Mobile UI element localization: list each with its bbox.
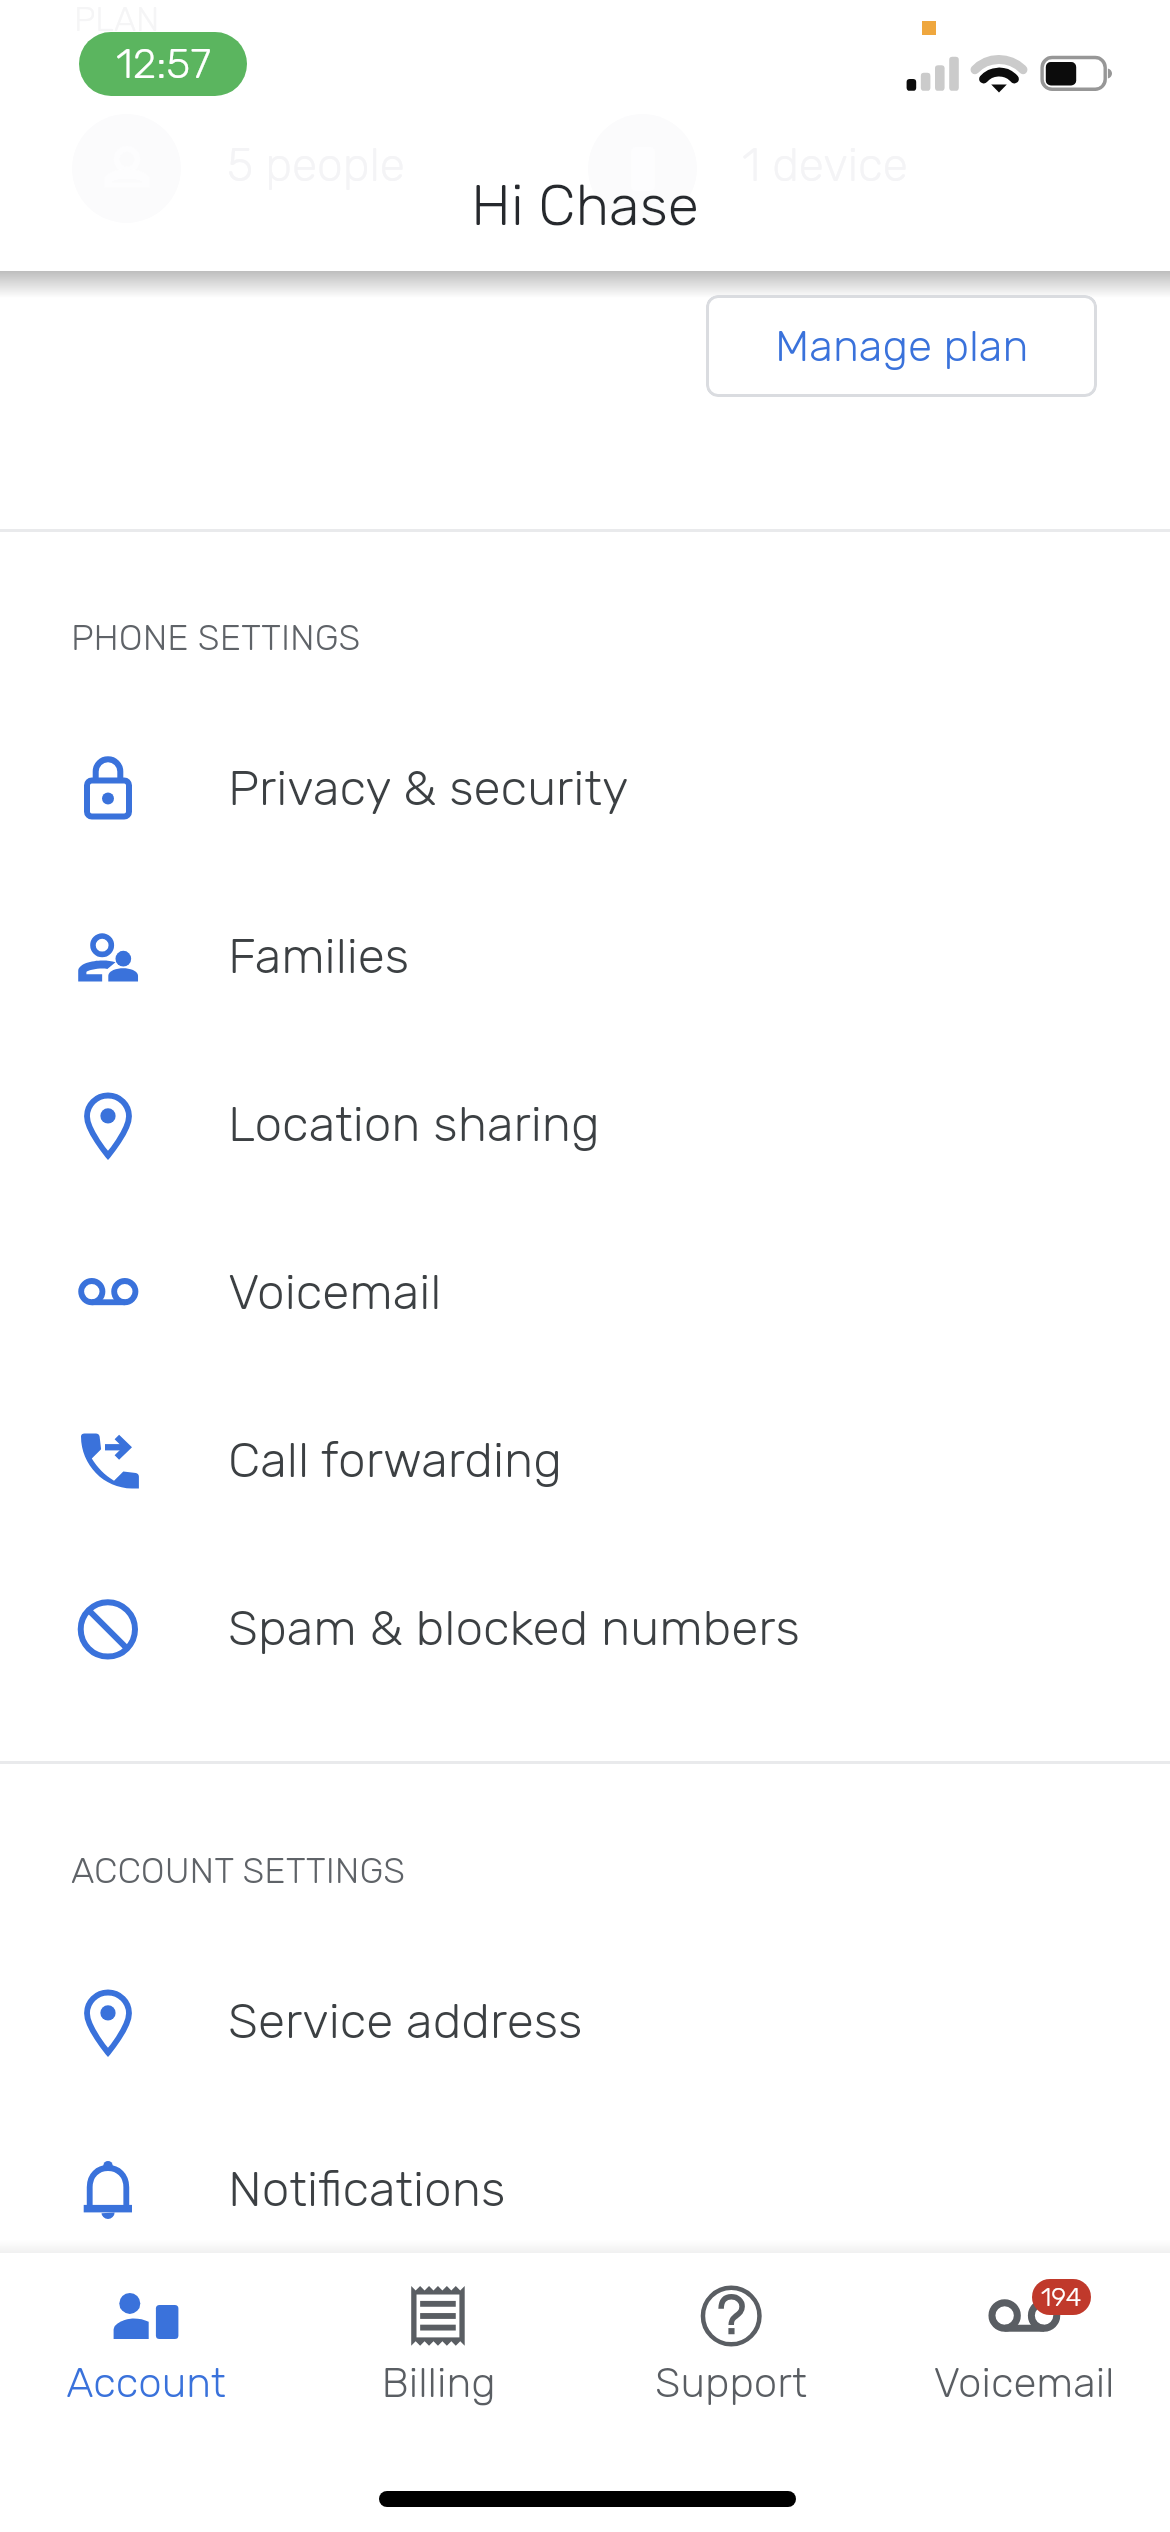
staticText: ACCOUNT SETTINGS bbox=[71, 1849, 406, 1892]
staticText: Notifications bbox=[228, 2160, 506, 2219]
staticText: 1 device bbox=[742, 138, 908, 193]
button[interactable]: Manage plan bbox=[706, 295, 1097, 397]
button[interactable]: Notifications bbox=[0, 2105, 1170, 2273]
staticText: 5 people bbox=[227, 138, 405, 193]
button[interactable]: Location sharing bbox=[0, 1040, 1170, 1208]
button[interactable]: Account bbox=[0, 2253, 292, 2453]
button[interactable]: Support bbox=[584, 2253, 877, 2453]
staticText: PLAN bbox=[74, 0, 160, 39]
staticText: 12:57 bbox=[116, 39, 211, 89]
staticText: Spam & blocked numbers bbox=[228, 1599, 800, 1658]
button[interactable]: Call forwarding bbox=[0, 1376, 1170, 1544]
staticText: Call forwarding bbox=[228, 1431, 562, 1490]
staticText: Location sharing bbox=[228, 1095, 600, 1154]
button[interactable]: Families bbox=[0, 872, 1170, 1040]
button[interactable]: Voicemail bbox=[877, 2253, 1170, 2453]
button[interactable]: Voicemail bbox=[0, 1208, 1170, 1376]
button[interactable]: Service address bbox=[0, 1937, 1170, 2105]
staticText: PHONE SETTINGS bbox=[71, 616, 361, 659]
button[interactable]: Spam & blocked numbers bbox=[0, 1544, 1170, 1712]
other: Support bbox=[695, 2280, 767, 2352]
staticText: Voicemail bbox=[228, 1263, 442, 1322]
staticText: 194 bbox=[1041, 2282, 1082, 2313]
staticText: Billing bbox=[381, 2358, 496, 2408]
staticText: Manage plan bbox=[775, 320, 1029, 372]
staticText: Families bbox=[228, 927, 410, 986]
button[interactable]: Billing bbox=[292, 2253, 584, 2453]
other: Billing bbox=[402, 2280, 474, 2352]
staticText: Hi Chase bbox=[471, 172, 699, 240]
button[interactable]: Privacy & security bbox=[0, 704, 1170, 872]
other: Account bbox=[110, 2280, 182, 2352]
staticText: Voicemail bbox=[933, 2358, 1115, 2408]
staticText: Support bbox=[655, 2358, 807, 2408]
staticText: Service address bbox=[228, 1992, 583, 2051]
staticText: Account bbox=[66, 2358, 226, 2408]
staticText: Privacy & security bbox=[228, 759, 629, 818]
